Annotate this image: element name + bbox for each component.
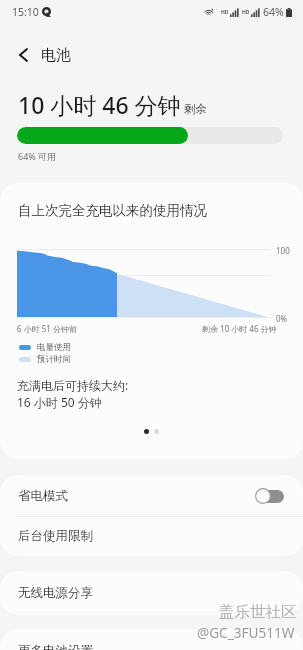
staticText: 64% 可用 — [18, 150, 57, 162]
staticText: 自上次完全充电以来的使用情况 — [18, 202, 207, 219]
staticText: 15:10 — [12, 5, 39, 19]
staticText: 16 小时 50 分钟 — [17, 394, 102, 410]
staticText: @GC_3FU511W — [197, 623, 295, 642]
button[interactable]: 省电模式 — [0, 475, 303, 516]
staticText: HD — [242, 9, 250, 16]
button[interactable]: Back — [8, 40, 38, 70]
button[interactable]: 无线电源分享 — [0, 571, 303, 615]
button[interactable]: 后台使用限制 — [0, 516, 303, 556]
staticText: 电池 — [41, 46, 71, 65]
staticText: 剩余 10 小时 46 分钟 — [202, 323, 277, 334]
staticText: 盖乐世社区 — [219, 602, 297, 622]
staticText: 省电模式 — [18, 488, 68, 504]
staticText: HD — [221, 9, 229, 16]
button[interactable]: Power saving mode toggle — [255, 488, 284, 504]
staticText: 无线电源分享 — [18, 585, 93, 601]
staticText: 64% — [263, 5, 284, 19]
staticText: 更多电池设置 — [18, 643, 93, 650]
staticText: 6 小时 51 分钟前 — [17, 323, 77, 334]
staticText: 后台使用限制 — [18, 528, 93, 544]
staticText: 100 — [276, 245, 290, 256]
staticText: 充满电后可持续大约: — [17, 377, 129, 393]
staticText: 预计时间 — [37, 354, 71, 365]
staticText: 电量使用 — [37, 342, 71, 353]
staticText: 10 小时 46 分钟 — [18, 89, 181, 120]
staticText: 0% — [276, 313, 288, 324]
staticText: 剩余 — [184, 102, 207, 116]
button[interactable]: 更多电池设置 — [0, 629, 303, 650]
